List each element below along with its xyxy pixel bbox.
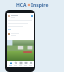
button[interactable]: Notifications — [23, 62, 28, 66]
button[interactable]: Search — [13, 62, 18, 66]
button[interactable]: Profile — [8, 14, 33, 18]
button[interactable] — [8, 32, 33, 36]
staticText: Inspire — [31, 2, 49, 9]
button[interactable]: Home — [8, 62, 13, 66]
staticText: HCA — [16, 2, 27, 9]
button[interactable] — [7, 40, 34, 61]
button[interactable]: HCA — [0, 0, 64, 10]
button[interactable]: Add — [18, 62, 23, 66]
button[interactable]: Profile — [28, 62, 33, 66]
